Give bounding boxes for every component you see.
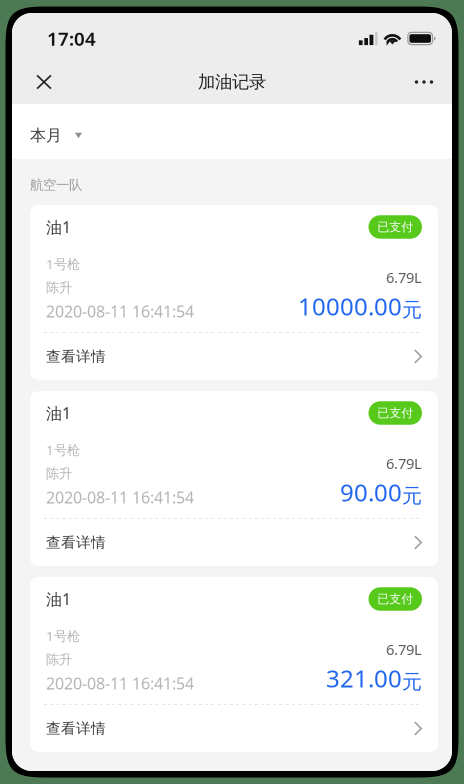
staticText: 6.79L	[386, 453, 422, 473]
button[interactable]: 查看详情	[30, 705, 438, 752]
staticText: 6.79L	[386, 639, 422, 659]
staticText: 陈升	[46, 651, 72, 668]
staticText: 查看详情	[46, 347, 106, 365]
button[interactable]: More options	[402, 60, 446, 104]
staticText: 2020-08-11 16:41:54	[46, 673, 194, 694]
staticText: 321.00	[326, 662, 402, 694]
button[interactable]: Close	[22, 60, 66, 104]
button[interactable]: 查看详情	[30, 333, 438, 380]
staticText: 元	[402, 297, 422, 322]
staticText: 已支付	[377, 220, 413, 234]
staticText: 已支付	[377, 592, 413, 606]
button[interactable]: 本月	[12, 104, 452, 159]
staticText: 油1	[46, 588, 71, 610]
staticText: 元	[402, 483, 422, 508]
staticText: 加油记录	[198, 71, 266, 93]
staticText: 查看详情	[46, 533, 106, 551]
staticText: 元	[402, 669, 422, 694]
staticText: 2020-08-11 16:41:54	[46, 487, 194, 508]
staticText: 1号枪	[46, 441, 80, 459]
staticText: 陈升	[46, 465, 72, 482]
staticText: 10000.00	[298, 290, 402, 322]
staticText: 已支付	[377, 406, 413, 420]
staticText: 90.00	[340, 476, 402, 508]
button[interactable]: 查看详情	[30, 519, 438, 566]
staticText: 1号枪	[46, 255, 80, 273]
staticText: 陈升	[46, 279, 72, 296]
staticText: 6.79L	[386, 267, 422, 287]
staticText: 本月	[30, 126, 62, 145]
staticText: 油1	[46, 402, 71, 424]
staticText: 2020-08-11 16:41:54	[46, 301, 194, 322]
staticText: 航空一队	[30, 177, 82, 193]
staticText: 查看详情	[46, 719, 106, 737]
staticText: 17:04	[47, 26, 96, 51]
staticText: 1号枪	[46, 627, 80, 645]
staticText: 油1	[46, 216, 71, 238]
